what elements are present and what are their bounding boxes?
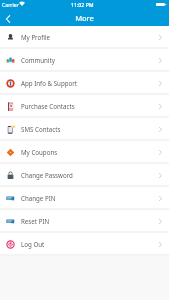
staticText: Change PIN [21, 194, 56, 202]
staticText: Reset PIN [21, 217, 50, 225]
button[interactable]: Community [0, 49, 169, 72]
staticText: Community [21, 56, 55, 64]
staticText: Purchase Contacts [21, 102, 75, 110]
button[interactable]: My Profile [0, 26, 169, 49]
button[interactable]: Purchase Contacts [0, 95, 169, 118]
staticText: Log Out [21, 240, 45, 248]
staticText: 11:02 PM [71, 1, 94, 8]
staticText: SMS Contacts [21, 125, 61, 133]
staticText: Carrier [2, 1, 19, 8]
button[interactable]: App Info & Support [0, 72, 169, 95]
button[interactable]: Change Password [0, 164, 169, 187]
staticText: My Profile [21, 33, 51, 41]
button[interactable]: Reset PIN [0, 210, 169, 233]
button[interactable]: My Coupons [0, 141, 169, 164]
button[interactable]: SMS Contacts [0, 118, 169, 141]
staticText: My Coupons [21, 148, 58, 156]
staticText: More [75, 13, 94, 23]
staticText: App Info & Support [21, 79, 78, 87]
staticText: Change Password [21, 171, 73, 179]
button[interactable]: Back [0, 11, 16, 26]
button[interactable]: Change PIN [0, 187, 169, 210]
button[interactable]: Log Out [0, 233, 169, 256]
